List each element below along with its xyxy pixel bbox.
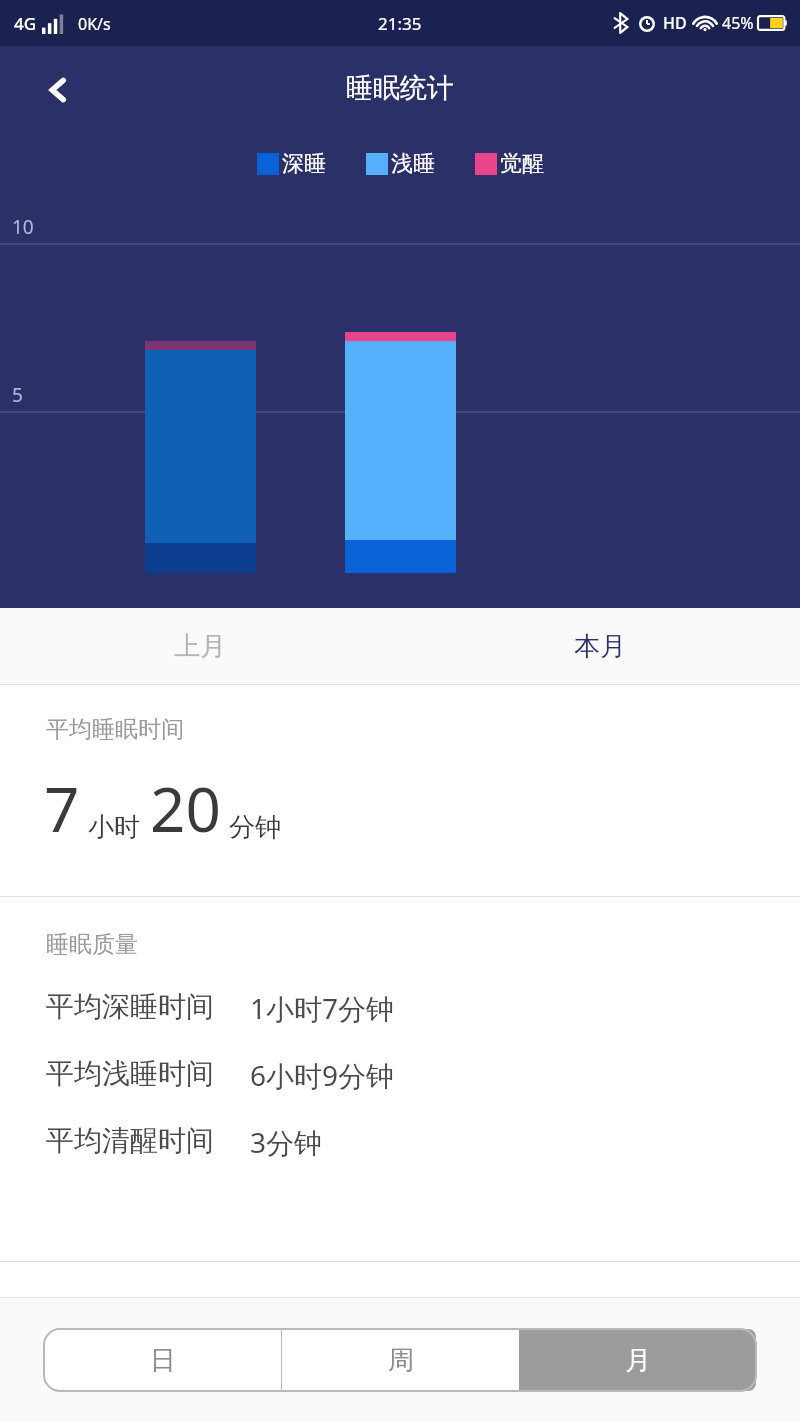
- staticText: 本月: [574, 630, 626, 663]
- button[interactable]: 平均清醒时间: [0, 1123, 800, 1161]
- staticText: 平均清醒时间: [46, 1123, 214, 1158]
- staticText: 上月: [174, 630, 226, 663]
- staticText: 平均睡眠时间: [46, 715, 184, 744]
- staticText: 5: [12, 382, 23, 408]
- button[interactable]: 上月: [0, 608, 400, 684]
- staticText: 1小时7分钟: [250, 989, 395, 1027]
- staticText: 0K/s: [78, 13, 111, 35]
- button[interactable]: 月: [519, 1329, 756, 1391]
- staticText: 平均深睡时间: [46, 989, 214, 1024]
- button[interactable]: Back: [36, 68, 80, 112]
- button[interactable]: 本月: [400, 608, 800, 684]
- staticText: 7: [44, 766, 80, 850]
- staticText: 平均浅睡时间: [46, 1056, 214, 1091]
- button[interactable]: 周: [282, 1329, 519, 1391]
- staticText: 6小时9分钟: [250, 1056, 395, 1094]
- staticText: 21:35: [378, 12, 422, 35]
- staticText: 20: [150, 766, 221, 850]
- staticText: 睡眠统计: [346, 71, 454, 105]
- staticText: 日: [150, 1344, 176, 1377]
- staticText: 3分钟: [250, 1123, 323, 1161]
- button[interactable]: 平均深睡时间: [0, 989, 800, 1027]
- staticText: 45%: [722, 12, 754, 34]
- staticText: 月: [625, 1344, 651, 1377]
- staticText: 周: [388, 1344, 414, 1377]
- staticText: 浅睡: [391, 150, 435, 178]
- staticText: 4G: [14, 12, 37, 35]
- staticText: 觉醒: [500, 150, 544, 178]
- staticText: 10: [12, 214, 34, 240]
- staticText: HD: [663, 12, 687, 34]
- button[interactable]: 日: [44, 1329, 281, 1391]
- staticText: 小时: [88, 811, 140, 844]
- button[interactable]: 平均浅睡时间: [0, 1056, 800, 1094]
- staticText: 睡眠质量: [46, 930, 138, 959]
- staticText: 深睡: [282, 150, 326, 178]
- staticText: 分钟: [229, 811, 281, 844]
